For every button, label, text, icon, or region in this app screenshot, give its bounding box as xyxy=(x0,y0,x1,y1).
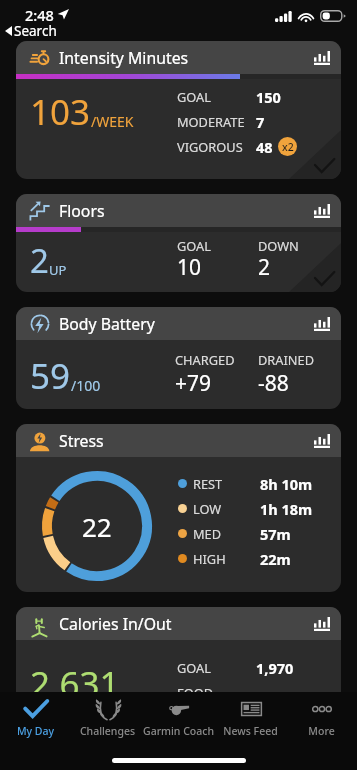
staticText: 22m xyxy=(260,549,291,568)
button[interactable]: Calories In/Out xyxy=(16,607,341,760)
staticText: /WEEK xyxy=(91,112,134,131)
staticText: HIGH xyxy=(193,550,226,567)
staticText: GOAL xyxy=(177,88,211,105)
button[interactable]: Garmin Coach xyxy=(143,696,214,744)
staticText: CHARGED xyxy=(175,351,235,368)
staticText: Calories In/Out xyxy=(59,613,172,635)
staticText: VIGOROUS xyxy=(177,138,243,155)
staticText: 10 xyxy=(177,253,202,282)
button[interactable]: More xyxy=(286,696,357,744)
staticText: -88 xyxy=(258,369,289,398)
staticText: 1h 18m xyxy=(260,499,313,518)
button[interactable]: View chart xyxy=(310,429,334,453)
button[interactable]: View chart xyxy=(310,612,334,636)
staticText: Intensity Minutes xyxy=(59,47,189,69)
staticText: +79 xyxy=(175,369,212,398)
staticText: FOOD xyxy=(177,684,213,701)
staticText: GOAL xyxy=(177,659,211,676)
button[interactable]: News Feed xyxy=(215,696,286,744)
button[interactable]: View chart xyxy=(310,46,334,70)
staticText: Floors xyxy=(59,200,105,222)
staticText: DOWN xyxy=(258,237,299,254)
staticText: My Day xyxy=(0,724,71,738)
button[interactable]: Body Battery xyxy=(16,307,341,409)
staticText: DRAINED xyxy=(258,351,314,368)
staticText: 8h 10m xyxy=(260,474,313,493)
staticText: LOW xyxy=(193,500,222,517)
staticText: REST xyxy=(193,475,223,492)
staticText: 7 xyxy=(256,112,265,131)
button[interactable]: View chart xyxy=(310,199,334,223)
staticText: 2 xyxy=(30,238,49,283)
button[interactable]: My Day xyxy=(0,696,71,744)
button[interactable]: Stress xyxy=(16,424,341,592)
staticText: News Feed xyxy=(215,724,286,738)
staticText: 57m xyxy=(260,524,291,543)
staticText: Stress xyxy=(59,430,104,452)
staticText: x2 xyxy=(282,140,294,154)
staticText: 2 xyxy=(258,253,271,282)
staticText: Body Battery xyxy=(59,313,155,335)
staticText: Challenges xyxy=(72,724,143,738)
button[interactable]: Challenges xyxy=(72,696,143,744)
staticText: 48 xyxy=(256,137,273,156)
staticText: Search xyxy=(14,22,57,40)
staticText: MED xyxy=(193,525,222,542)
button[interactable]: Intensity Minutes xyxy=(16,41,341,179)
staticText: GOAL xyxy=(177,237,211,254)
staticText: Garmin Coach xyxy=(143,724,214,738)
staticText: 150 xyxy=(256,87,281,106)
staticText: More xyxy=(286,724,357,738)
staticText: 1,970 xyxy=(256,658,294,677)
staticText: MODERATE xyxy=(177,113,245,130)
staticText: 59 xyxy=(30,352,71,400)
staticText: 2,631 xyxy=(30,660,120,708)
staticText: 2:48 xyxy=(25,5,54,25)
staticText: 103 xyxy=(30,88,91,136)
staticText: - - xyxy=(256,683,270,702)
staticText: /100 xyxy=(71,376,101,395)
button[interactable]: Floors xyxy=(16,194,341,292)
staticText: UP xyxy=(49,261,67,279)
button[interactable]: View chart xyxy=(310,312,334,336)
staticText: 22 xyxy=(82,509,112,544)
